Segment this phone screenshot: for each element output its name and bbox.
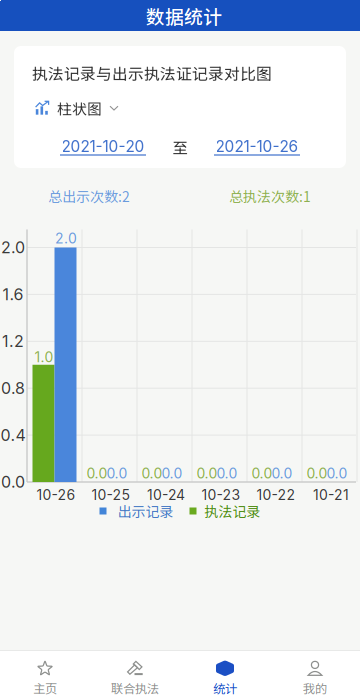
staticText: 0.8 [1, 378, 25, 398]
button[interactable]: 我的 [270, 651, 360, 700]
staticText: 0.0 [196, 465, 217, 482]
staticText: 主页 [33, 679, 57, 697]
staticText: 2021-10-20 [61, 137, 144, 156]
staticText: 0.0 [141, 465, 162, 482]
staticText: 执法记录与出示执法证记录对比图 [32, 62, 272, 84]
button[interactable]: 联合执法 [90, 651, 180, 700]
staticText: 0.0 [86, 465, 107, 482]
staticText: 10-24 [147, 486, 185, 503]
staticText: 1.0 [34, 349, 53, 366]
staticText: 0.0 [251, 465, 272, 482]
staticText: 10-22 [256, 486, 295, 503]
staticText: 1.2 [2, 332, 24, 351]
staticText: 10-25 [91, 486, 130, 503]
button[interactable]: 柱状图 [35, 97, 139, 119]
button[interactable]: 2021-10-20 [55, 136, 151, 157]
staticText: 1.6 [2, 285, 23, 304]
staticText: 2.0 [1, 238, 25, 257]
staticText: 执法记录 [204, 501, 260, 521]
staticText: 总出示次数:2 [48, 186, 130, 206]
button[interactable]: 2021-10-26 [209, 136, 305, 157]
staticText: 总执法次数:1 [229, 186, 311, 206]
staticText: 0.0 [161, 465, 182, 482]
staticText: 0.0 [1, 472, 25, 492]
staticText: 至 [172, 136, 187, 158]
staticText: 0.0 [271, 465, 292, 482]
staticText: 我的 [303, 679, 327, 697]
staticText: 联合执法 [111, 679, 159, 697]
button[interactable]: 主页 [0, 651, 90, 700]
button[interactable]: 统计 [180, 651, 270, 700]
staticText: 0.4 [0, 425, 25, 445]
staticText: 出示记录 [117, 501, 173, 521]
staticText: 统计 [213, 679, 237, 697]
staticText: 2.0 [55, 230, 77, 247]
staticText: 0.0 [306, 465, 327, 482]
staticText: 10-23 [201, 486, 240, 503]
staticText: 0.0 [216, 465, 237, 482]
staticText: 柱状图 [57, 97, 102, 119]
staticText: 2021-10-26 [215, 137, 298, 156]
staticText: 10-26 [36, 486, 75, 503]
staticText: 10-21 [313, 486, 349, 503]
staticText: 数据统计 [146, 2, 222, 29]
staticText: 0.0 [106, 465, 127, 482]
staticText: 0.0 [326, 465, 347, 482]
